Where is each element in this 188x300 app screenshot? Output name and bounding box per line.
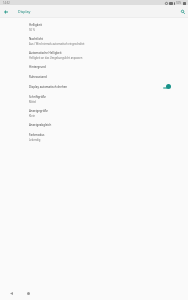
button[interactable]: Display automatisch drehen bbox=[0, 82, 188, 92]
staticText: Aus / Wird niemals automatisch eingescha… bbox=[29, 42, 85, 46]
button[interactable]: Startbildschirm bbox=[24, 289, 33, 298]
staticText: Helligkeit bbox=[29, 23, 42, 27]
button[interactable]: Automatische Helligkeit bbox=[0, 48, 188, 62]
staticText: Schriftgröße bbox=[29, 95, 46, 99]
button[interactable]: Ruhezustand bbox=[0, 72, 188, 82]
button[interactable]: Farbmodus bbox=[0, 130, 188, 144]
staticText: 50 % bbox=[29, 28, 35, 32]
staticText: Display bbox=[18, 9, 31, 14]
staticText: Display automatisch drehen bbox=[29, 85, 68, 89]
button[interactable]: Schriftgröße bbox=[0, 92, 188, 106]
button[interactable]: Suchen bbox=[178, 7, 187, 16]
staticText: Ruhezustand bbox=[29, 75, 47, 79]
staticText: Klein bbox=[29, 114, 36, 118]
button[interactable]: Anzeigeabgleich bbox=[0, 120, 188, 130]
staticText: Anzeigeabgleich bbox=[29, 123, 52, 127]
button[interactable]: Nachtlicht bbox=[0, 34, 188, 48]
staticText: Anzeigegröße bbox=[29, 109, 48, 113]
staticText: Automatische Helligkeit bbox=[29, 51, 62, 55]
button[interactable]: Hintergrund bbox=[0, 62, 188, 72]
staticText: Nachtlicht bbox=[29, 37, 43, 41]
staticText: 92% bbox=[176, 1, 182, 5]
staticText: Helligkeit an das Umgebungslicht anpasse… bbox=[29, 56, 83, 60]
button[interactable]: Anzeigegröße bbox=[0, 106, 188, 120]
staticText: Lebendig bbox=[29, 138, 41, 142]
button[interactable]: Helligkeit bbox=[0, 20, 188, 34]
staticText: Mittel bbox=[29, 100, 37, 104]
button[interactable]: Zurück bbox=[7, 289, 16, 298]
staticText: Farbmodus bbox=[29, 133, 45, 137]
staticText: 14:52 bbox=[3, 1, 10, 5]
staticText: Hintergrund bbox=[29, 65, 46, 69]
button[interactable]: Zurück bbox=[1, 7, 11, 17]
